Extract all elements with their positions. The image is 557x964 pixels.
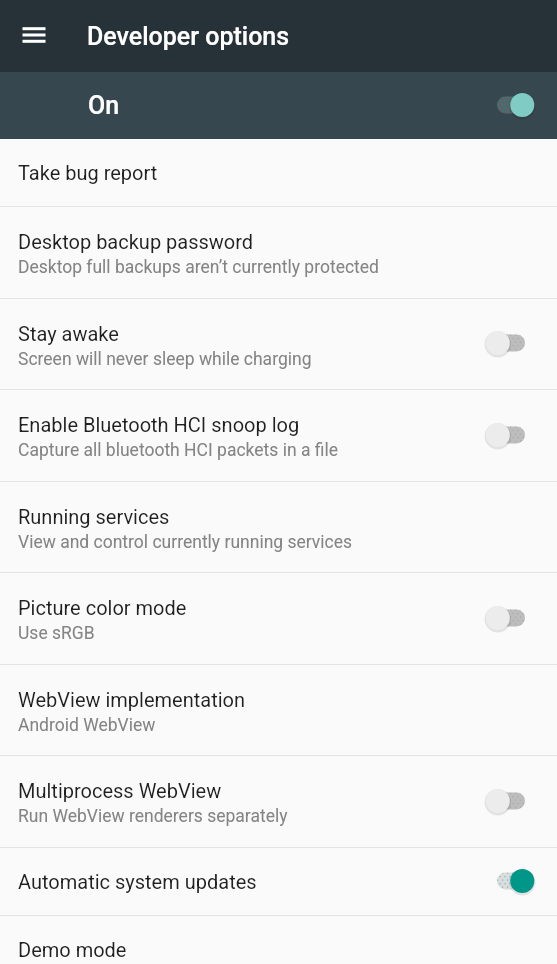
button[interactable]: On [485,91,535,121]
button[interactable]: Automatic system updates [0,848,557,915]
button[interactable]: Demo mode [0,916,557,964]
button[interactable]: Desktop backup password [0,207,557,298]
staticText: Stay awake [18,322,119,345]
button[interactable]: Off [485,329,535,359]
staticText: Use sRGB [18,623,95,644]
staticText: On [88,91,120,120]
button[interactable]: Running services [0,482,557,572]
button[interactable]: Enable Bluetooth HCI snoop log [0,390,557,481]
button[interactable]: Stay awake [0,299,557,389]
staticText: Desktop backup password [18,230,254,253]
staticText: View and control currently running servi… [18,532,353,553]
staticText: Android WebView [18,715,156,736]
staticText: Screen will never sleep while charging [18,349,312,370]
button[interactable]: On [485,867,535,897]
staticText: Enable Bluetooth HCI snoop log [18,413,300,436]
button[interactable]: On [0,72,557,139]
staticText: Automatic system updates [18,870,257,893]
button[interactable]: Menu [10,12,58,60]
staticText: Take bug report [18,161,158,184]
staticText: Developer options [87,22,290,51]
staticText: Run WebView renderers separately [18,806,288,827]
button[interactable]: Off [485,421,535,451]
button[interactable]: Picture color mode [0,573,557,664]
staticText: Capture all bluetooth HCI packets in a f… [18,440,339,461]
button[interactable]: WebView implementation [0,665,557,755]
button[interactable]: Off [485,787,535,817]
button[interactable]: Take bug report [0,139,557,206]
staticText: Running services [18,505,170,528]
staticText: WebView implementation [18,688,246,711]
staticText: Demo mode [18,938,127,961]
staticText: Picture color mode [18,596,187,619]
staticText: Multiprocess WebView [18,779,222,802]
button[interactable]: Off [485,604,535,634]
staticText: Desktop full backups aren’t currently pr… [18,257,379,278]
button[interactable]: Multiprocess WebView [0,756,557,847]
